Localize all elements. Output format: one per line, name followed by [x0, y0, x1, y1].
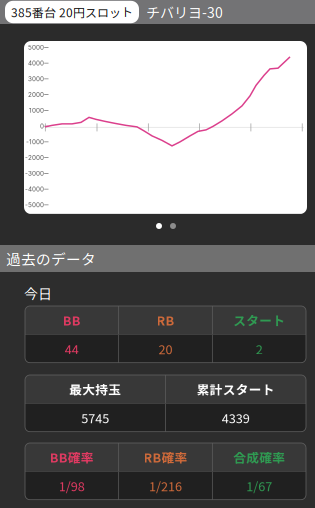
- staticText: 累計スタート: [197, 380, 275, 398]
- staticText: -3000: [25, 170, 44, 177]
- staticText: 5000: [28, 44, 44, 51]
- staticText: -4000: [25, 185, 44, 193]
- staticText: 4000: [28, 59, 44, 67]
- staticText: 0: [40, 122, 44, 130]
- staticText: チバリヨ-30: [146, 2, 223, 22]
- staticText: 2000: [28, 91, 44, 98]
- staticText: 3000: [28, 75, 44, 83]
- staticText: 1/67: [246, 476, 272, 495]
- staticText: 4339: [222, 408, 250, 427]
- staticText: スタート: [233, 311, 285, 329]
- staticText: 最大持玉: [69, 380, 121, 398]
- staticText: 1/98: [59, 476, 85, 495]
- staticText: 1/216: [149, 476, 182, 495]
- button[interactable]: 385番台 20円スロット: [5, 1, 139, 23]
- staticText: 今日: [24, 283, 52, 303]
- staticText: 20: [158, 339, 172, 358]
- staticText: BB確率: [50, 448, 94, 466]
- staticText: -5000: [25, 201, 44, 209]
- staticText: 2: [256, 339, 263, 358]
- staticText: 過去のデータ: [6, 248, 96, 269]
- staticText: BB: [63, 311, 81, 329]
- staticText: 385番台 20円スロット: [11, 3, 133, 21]
- staticText: 1000: [29, 107, 44, 114]
- staticText: 44: [65, 339, 79, 358]
- staticText: -1000: [26, 138, 44, 146]
- staticText: 5745: [81, 408, 109, 427]
- staticText: -2000: [25, 154, 44, 161]
- staticText: 合成確率: [233, 448, 285, 466]
- staticText: RB確率: [143, 448, 187, 466]
- staticText: RB: [156, 311, 174, 329]
